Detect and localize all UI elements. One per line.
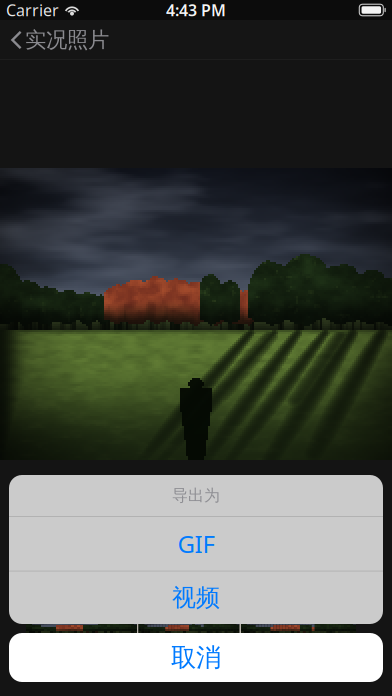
staticText: Carrier (6, 0, 59, 21)
staticText: 视频 (172, 583, 220, 612)
staticText: 实况照片 (25, 27, 109, 53)
button[interactable]: 取消 (9, 633, 383, 682)
staticText: 4:43 PM (166, 0, 226, 21)
staticText: 取消 (171, 642, 221, 673)
button[interactable]: GIF (9, 517, 383, 571)
staticText: GIF (177, 528, 214, 560)
button[interactable]: 视频 (9, 571, 383, 624)
button[interactable]: 实况照片 (0, 20, 121, 60)
staticText: 导出为 (172, 486, 220, 505)
